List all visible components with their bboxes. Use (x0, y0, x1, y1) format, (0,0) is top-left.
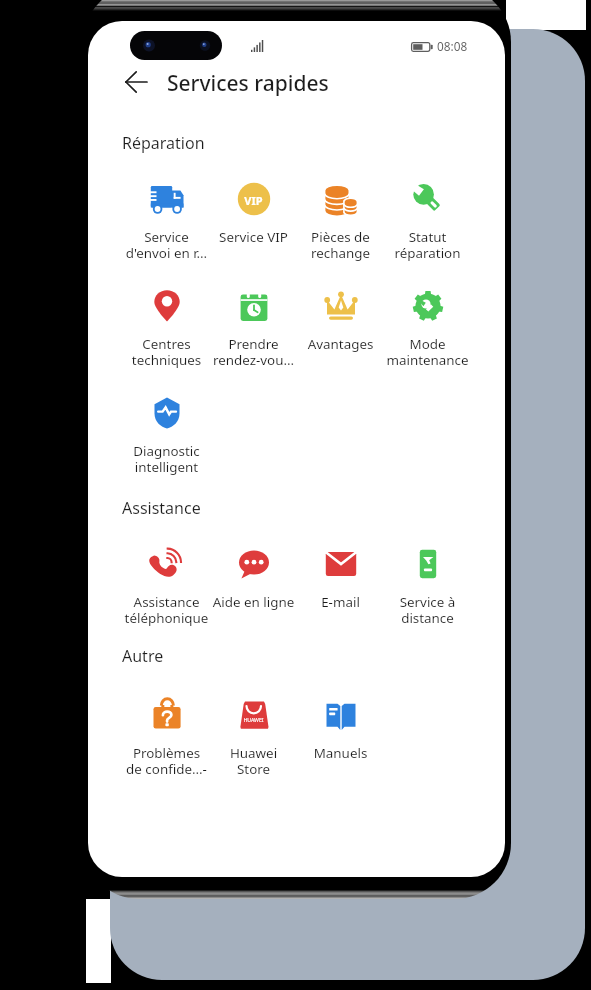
button[interactable]: Problèmes de confide…- (123, 698, 210, 776)
button[interactable]: Manuels (297, 698, 384, 776)
button[interactable]: Diagnostic intelligent (123, 396, 210, 474)
button[interactable]: E-mail (297, 547, 384, 625)
staticText: Centres techniques (123, 335, 210, 369)
staticText: Avantages (297, 335, 384, 353)
staticText: Service VIP (210, 228, 297, 246)
button[interactable]: Aide en ligne (210, 547, 297, 625)
staticText: Diagnostic intelligent (123, 442, 210, 476)
button[interactable]: Huawei Store (210, 698, 297, 776)
staticText: Statut réparation (384, 228, 471, 262)
button[interactable]: Prendre rendez-vou… (210, 289, 297, 367)
staticText: 08:08 (437, 38, 468, 54)
staticText: Problèmes de confide…- (123, 744, 210, 778)
button[interactable]: Assistance téléphonique (123, 547, 210, 625)
staticText: Pièces de rechange (297, 228, 384, 262)
staticText: Manuels (297, 744, 384, 762)
staticText: HUAWEI (243, 716, 264, 723)
staticText: Huawei Store (210, 744, 297, 778)
button[interactable]: Service VIP (210, 182, 297, 260)
staticText: Prendre rendez-vou… (210, 335, 297, 369)
staticText: Autre (122, 645, 164, 667)
staticText: Réparation (122, 132, 205, 154)
button[interactable]: Service d'envoi en r… (123, 182, 210, 260)
button[interactable]: Pièces de rechange (297, 182, 384, 260)
staticText: Aide en ligne (210, 593, 297, 611)
button[interactable]: Avantages (297, 289, 384, 367)
staticText: Assistance téléphonique (123, 593, 210, 627)
staticText: VIP (244, 193, 263, 208)
button[interactable]: Statut réparation (384, 182, 471, 260)
button[interactable]: Back (117, 65, 155, 103)
button[interactable]: Centres techniques (123, 289, 210, 367)
button[interactable]: Mode maintenance (384, 289, 471, 367)
staticText: E-mail (297, 593, 384, 611)
staticText: Service d'envoi en r… (123, 228, 210, 262)
staticText: Service à distance (384, 593, 471, 627)
staticText: Assistance (122, 497, 201, 519)
staticText: Services rapides (167, 69, 329, 98)
staticText: Mode maintenance (384, 335, 471, 369)
button[interactable]: Service à distance (384, 547, 471, 625)
